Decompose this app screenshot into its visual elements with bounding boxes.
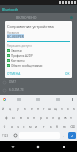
staticText: ⌫ xyxy=(70,125,75,129)
staticText: н xyxy=(37,106,40,111)
staticText: а xyxy=(27,115,29,120)
staticText: ч xyxy=(17,124,19,129)
button[interactable]: Google xyxy=(0,95,9,104)
staticText: э xyxy=(70,115,72,120)
staticText: DM7 xyxy=(9,80,17,84)
button[interactable]: ОТМЕНА xyxy=(7,72,21,76)
staticText: д xyxy=(58,115,61,120)
button[interactable]: й xyxy=(0,104,7,113)
button[interactable]: ш xyxy=(47,104,53,113)
button[interactable]: Back xyxy=(0,141,25,152)
button[interactable]: ?123 xyxy=(0,131,11,140)
button[interactable]: с xyxy=(21,122,27,131)
staticText: ц xyxy=(9,106,12,111)
button[interactable]: п xyxy=(31,113,38,122)
staticText: в xyxy=(20,115,22,120)
button[interactable]: в xyxy=(17,113,24,122)
button[interactable]: Home xyxy=(25,141,51,152)
button[interactable]: Звонки xyxy=(5,48,72,53)
staticText: Название xyxy=(7,31,20,35)
button[interactable]: е xyxy=(28,104,35,113)
staticText: л xyxy=(52,115,54,120)
button[interactable]: GIF xyxy=(28,95,48,104)
button[interactable]: Контакты xyxy=(5,58,72,63)
staticText: у xyxy=(17,106,19,111)
button[interactable]: Профиль A2DP xyxy=(5,53,72,58)
staticText: ?123 xyxy=(2,134,9,138)
button[interactable]: я xyxy=(9,122,15,131)
staticText: б xyxy=(56,124,59,129)
staticText: Звонки xyxy=(11,49,22,53)
button[interactable]: э xyxy=(68,113,74,122)
button[interactable]: ц xyxy=(7,104,14,113)
button[interactable]: н xyxy=(35,104,41,113)
button[interactable]: щ xyxy=(53,104,59,113)
staticText: ъ xyxy=(73,106,76,111)
button[interactable]: ж xyxy=(62,113,68,122)
staticText: ж xyxy=(64,115,67,120)
staticText: Профиль A2DP xyxy=(11,54,33,58)
staticText: Обмен сообщениями xyxy=(11,64,43,68)
staticText: ✓ xyxy=(71,134,74,137)
button[interactable]: Shift xyxy=(0,122,9,131)
button[interactable]: р xyxy=(38,113,44,122)
staticText: г xyxy=(43,106,45,111)
staticText: с xyxy=(23,124,25,129)
staticText: ю xyxy=(63,124,66,129)
staticText: о xyxy=(46,115,49,120)
staticText: ы xyxy=(12,115,15,120)
button[interactable]: Settings xyxy=(48,95,68,104)
button[interactable]: Stickers xyxy=(9,95,28,104)
button[interactable]: л xyxy=(50,113,56,122)
staticText: и xyxy=(35,124,38,129)
staticText: ь xyxy=(50,124,52,129)
staticText: ф xyxy=(5,115,8,120)
staticText: Сопряжение устройства xyxy=(7,24,54,29)
staticText: Разрешить доступ к xyxy=(7,44,32,48)
button[interactable]: Emoji xyxy=(11,131,19,140)
button[interactable]: и xyxy=(33,122,40,131)
staticText: ш xyxy=(48,106,52,111)
button[interactable]: ф xyxy=(3,113,10,122)
staticText: ОК xyxy=(65,72,70,76)
button[interactable]: 6.0-2M-7E xyxy=(0,86,77,94)
button[interactable]: у xyxy=(14,104,21,113)
staticText: т xyxy=(43,124,45,129)
staticText: е xyxy=(31,106,33,111)
button[interactable]: о xyxy=(44,113,50,122)
staticText: й xyxy=(2,106,5,111)
button[interactable]: т xyxy=(40,122,47,131)
button[interactable]: ВКЛЮЧЕНО xyxy=(0,13,77,21)
button[interactable]: ъ xyxy=(71,104,77,113)
staticText: ВКЛЮЧЕНО xyxy=(16,15,37,20)
button[interactable]: а xyxy=(24,113,31,122)
button[interactable]: DM7 xyxy=(0,78,77,86)
staticText: м xyxy=(29,124,32,129)
button[interactable]: Обмен сообщениями xyxy=(5,63,72,68)
button[interactable]: ч xyxy=(15,122,21,131)
button[interactable]: б xyxy=(54,122,61,131)
staticText: п xyxy=(33,115,36,120)
button[interactable]: ОК xyxy=(65,72,70,76)
staticText: х xyxy=(67,106,69,111)
button[interactable]: Enter xyxy=(68,132,76,139)
button[interactable]: ы xyxy=(10,113,17,122)
button[interactable]: Backspace xyxy=(68,122,77,131)
staticText: я xyxy=(11,124,13,129)
button[interactable]: ь xyxy=(47,122,54,131)
button[interactable]: More options xyxy=(68,95,77,104)
button[interactable]: з xyxy=(59,104,65,113)
button[interactable]: к xyxy=(21,104,28,113)
button[interactable]: Recents xyxy=(51,141,77,152)
staticText: Контакты xyxy=(11,59,25,63)
button[interactable]: ю xyxy=(61,122,68,131)
staticText: Bluetooth xyxy=(2,7,19,12)
staticText: . xyxy=(63,133,64,138)
button[interactable]: м xyxy=(27,122,33,131)
staticText: ОТМЕНА xyxy=(7,72,21,76)
button[interactable]: г xyxy=(41,104,47,113)
button[interactable]: д xyxy=(56,113,62,122)
button[interactable]: х xyxy=(65,104,71,113)
